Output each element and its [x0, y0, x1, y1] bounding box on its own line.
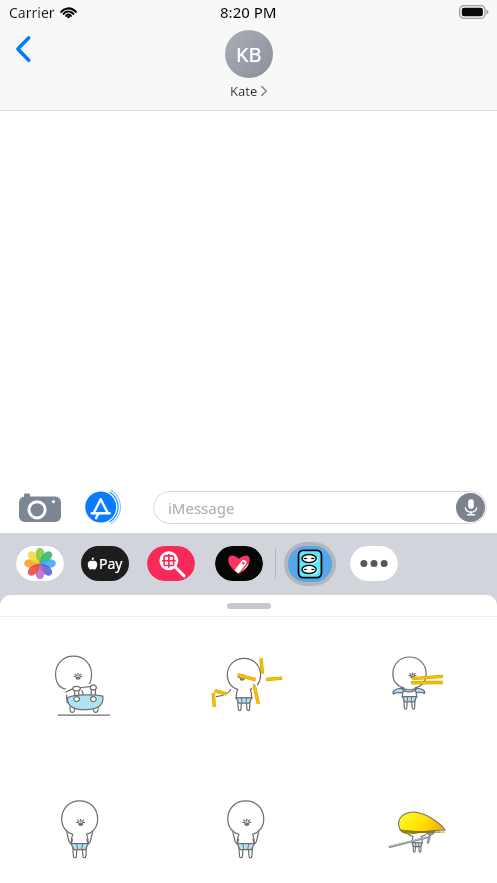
button[interactable]: iMessage: [153, 491, 487, 524]
staticText: KB: [236, 41, 262, 68]
button[interactable]: Sticker: [331, 617, 497, 750]
staticText: Kate: [230, 82, 258, 100]
button[interactable]: Photos: [16, 546, 64, 581]
button[interactable]: Kate: [230, 82, 267, 100]
button[interactable]: Stickers: [284, 542, 336, 586]
staticText: 8:20 PM: [220, 2, 277, 22]
button[interactable]: Apple Pay: [81, 546, 129, 581]
button[interactable]: Sticker: [165, 750, 331, 883]
button[interactable]: Sticker: [165, 617, 331, 750]
button[interactable]: App Store: [83, 488, 123, 526]
button[interactable]: Sticker: [0, 750, 165, 883]
staticText: iMessage: [168, 498, 235, 518]
button[interactable]: Resize: [227, 603, 271, 609]
button[interactable]: Camera: [19, 488, 61, 526]
button[interactable]: More: [350, 546, 398, 581]
button[interactable]: Kate avatar: [225, 30, 273, 78]
button[interactable]: Digital Touch: [215, 546, 263, 581]
button[interactable]: Back: [1, 27, 45, 71]
button[interactable]: Dictate: [456, 493, 485, 522]
staticText: Pay: [99, 554, 123, 573]
button[interactable]: Sticker: [0, 617, 165, 750]
button[interactable]: Sticker: [331, 750, 497, 883]
button[interactable]: Images: [147, 546, 195, 581]
staticText: Carrier: [9, 3, 55, 22]
